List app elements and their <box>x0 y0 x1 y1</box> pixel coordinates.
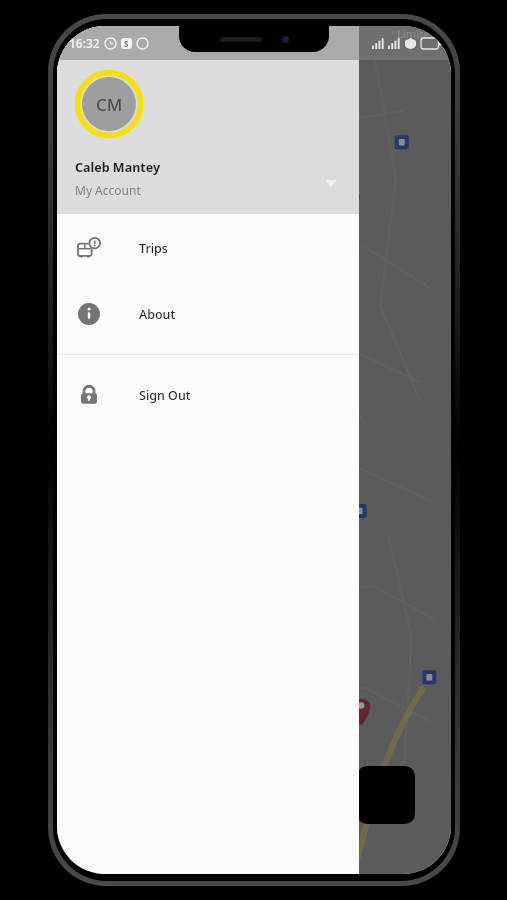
staticText: S <box>124 38 129 49</box>
staticText: About <box>139 306 176 323</box>
staticText: Sign Out <box>139 387 191 404</box>
staticText: 16:32 <box>69 35 100 51</box>
button[interactable]: Bottom sheet <box>357 766 415 824</box>
staticText: My Account <box>75 182 141 198</box>
button[interactable]: Sign Out <box>57 373 359 417</box>
button[interactable]: Trips <box>57 226 359 270</box>
button[interactable]: About <box>57 292 359 336</box>
button[interactable]: CM <box>57 26 359 214</box>
staticText: Caleb Mantey <box>75 159 161 176</box>
staticText: Trips <box>139 240 168 257</box>
staticText: Limited <box>397 26 437 41</box>
staticText: CM <box>96 93 123 116</box>
